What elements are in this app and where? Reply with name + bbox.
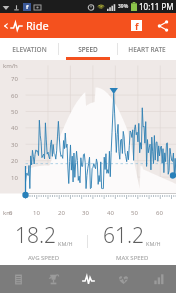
staticText: KM/H <box>146 240 161 247</box>
staticText: 50 <box>131 209 138 217</box>
staticText: 20 <box>58 209 65 217</box>
staticText: HEART RATE <box>128 45 166 54</box>
staticText: SPEED <box>78 45 98 54</box>
staticText: 39% <box>118 3 129 10</box>
staticText: KM/H <box>58 240 73 247</box>
staticText: 60 <box>11 92 18 100</box>
staticText: 50 <box>11 108 18 116</box>
button[interactable]: ELEVATION <box>0 38 58 60</box>
button[interactable]: 61.2 <box>88 221 176 262</box>
button[interactable]: Activity <box>71 265 106 293</box>
staticText: 10 <box>11 174 18 182</box>
staticText: km <box>3 209 12 217</box>
staticText: 18.2 <box>15 221 57 250</box>
staticText: 40 <box>11 124 18 132</box>
staticText: 30 <box>82 209 89 217</box>
staticText: 60 <box>156 209 163 217</box>
staticText: km/h <box>3 62 18 70</box>
staticText: Ride <box>26 18 49 33</box>
staticText: MAX SPEED <box>116 254 149 262</box>
staticText: 61.2 <box>103 221 145 250</box>
staticText: f <box>135 20 139 31</box>
button[interactable]: Back to Ride <box>0 15 51 36</box>
button[interactable]: Stats <box>141 265 176 293</box>
staticText: 20 <box>11 157 18 165</box>
staticText: 0 <box>9 209 13 217</box>
staticText: 10 <box>33 209 40 217</box>
staticText: 30 <box>11 141 18 149</box>
button[interactable]: 18.2 <box>0 221 87 262</box>
staticText: f <box>26 3 29 11</box>
button[interactable]: HEART RATE <box>117 38 176 60</box>
button[interactable]: Feed <box>0 265 36 293</box>
staticText: ELEVATION <box>12 45 47 54</box>
button[interactable]: SPEED <box>58 38 117 60</box>
staticText: 70 <box>11 75 18 83</box>
button[interactable]: Share <box>152 15 176 37</box>
button[interactable]: Challenges <box>36 265 71 293</box>
staticText: 10:11 PM <box>139 1 174 12</box>
button[interactable]: Heart rate <box>106 265 141 293</box>
staticText: 40 <box>107 209 114 217</box>
staticText: AVG SPEED <box>28 254 60 262</box>
button[interactable]: Share to Facebook <box>126 15 147 36</box>
